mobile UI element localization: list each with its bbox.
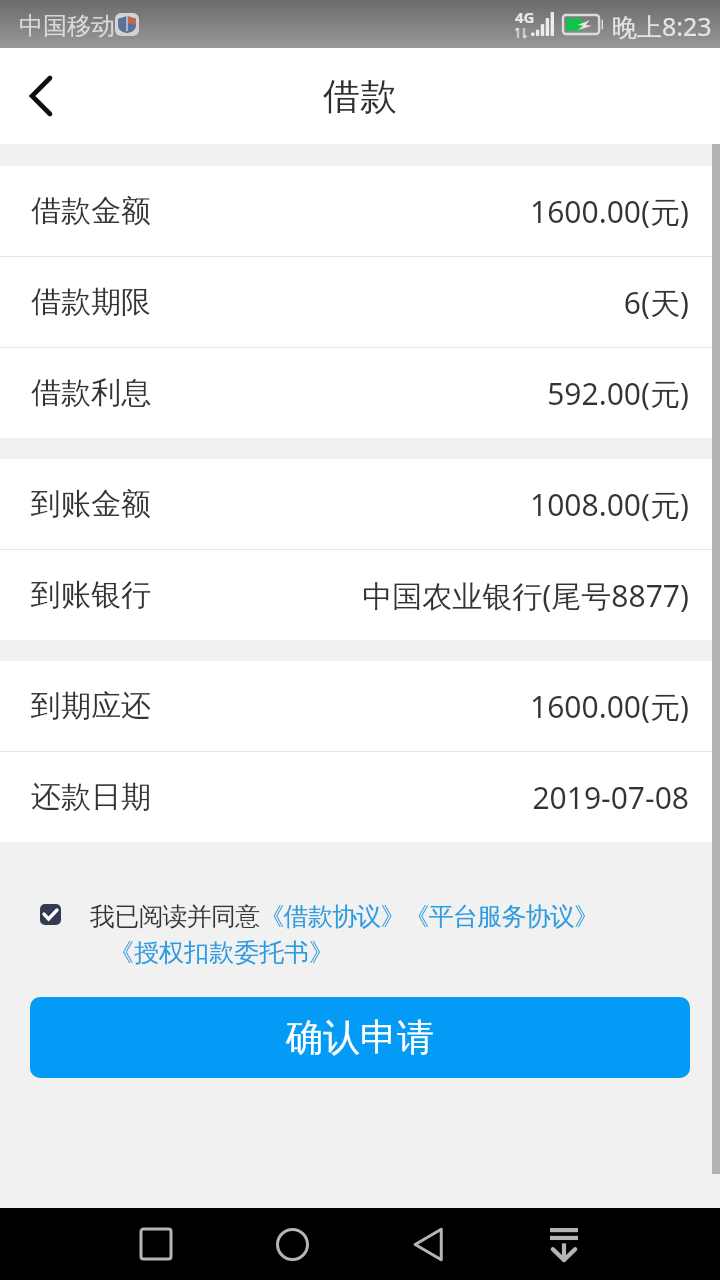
staticText: 到期应还 [31,687,151,725]
staticText: 借款金额 [31,192,151,230]
staticText: 4G [515,7,535,27]
staticText: 借款 [323,73,397,120]
staticText: 到账金额 [31,485,151,523]
staticText: 还款日期 [31,778,151,816]
button[interactable]: 借款金额 [0,166,720,256]
button[interactable]: Agree to terms [40,904,61,925]
button[interactable]: 到账银行 [0,550,720,640]
staticText: 中国移动 [19,11,115,41]
staticText: 6(天) [623,282,689,323]
button[interactable]: 还款日期 [0,752,720,842]
button[interactable]: 借款利息 [0,348,720,438]
staticText: 1008.00(元) [530,484,689,525]
staticText: 借款期限 [31,283,151,321]
staticText: 592.00(元) [547,373,689,414]
button[interactable]: Recent apps [120,1208,192,1280]
staticText: 1600.00(元) [530,686,689,727]
button[interactable]: 到账金额 [0,459,720,549]
staticText: 2019-07-08 [532,777,689,818]
button[interactable]: Back [0,48,82,144]
button[interactable]: 借款期限 [0,257,720,347]
staticText: 确认申请 [286,1014,434,1061]
button[interactable]: 确认申请 [30,997,690,1078]
staticText: 中国农业银行(尾号8877) [362,575,689,616]
button[interactable]: 我已阅读并同意《借款协议》《平台服务协议》 [90,901,599,932]
staticText: 1600.00(元) [530,191,689,232]
staticText: 晚上8:23 [612,9,712,43]
button[interactable]: 到期应还 [0,661,720,751]
staticText: 借款利息 [31,374,151,412]
button[interactable]: Hide navigation bar [528,1208,600,1280]
button[interactable]: 《授权扣款委托书》 [109,937,334,968]
button[interactable]: Back [392,1208,464,1280]
button[interactable]: Home [256,1208,328,1280]
staticText: 到账银行 [31,576,151,614]
